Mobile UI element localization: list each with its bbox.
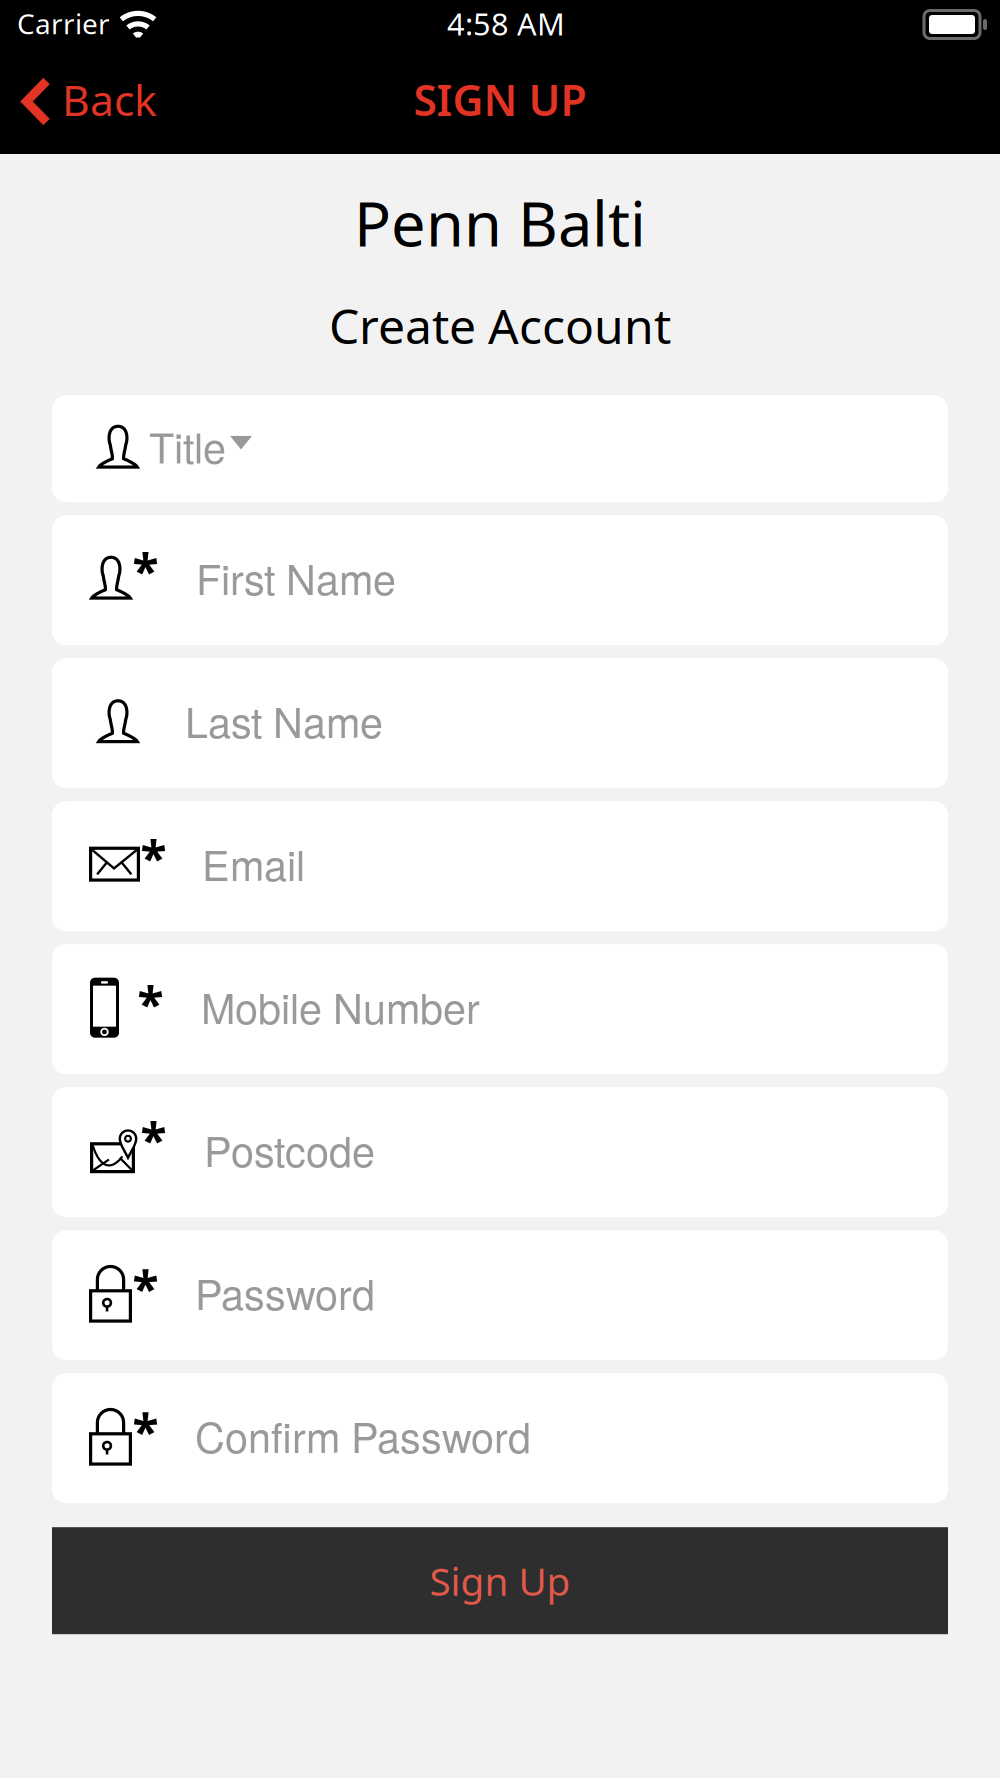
staticText: Mobile Number xyxy=(201,977,480,1036)
button[interactable]: * xyxy=(52,1230,948,1360)
staticText: * xyxy=(132,1256,158,1319)
button[interactable]: * xyxy=(52,801,948,931)
staticText: Confirm Password xyxy=(195,1406,531,1465)
staticText: Postcode xyxy=(204,1120,375,1179)
staticText: * xyxy=(140,825,166,889)
staticText: Create Account xyxy=(329,293,671,357)
staticText: Sign Up xyxy=(429,1555,570,1606)
staticText: * xyxy=(137,971,163,1035)
button[interactable]: * xyxy=(52,944,948,1074)
staticText: * xyxy=(132,538,158,602)
button[interactable]: Title xyxy=(52,395,948,502)
staticText: Back xyxy=(62,71,157,128)
staticText: 4:58 AM xyxy=(447,3,565,44)
button[interactable]: Last Name xyxy=(52,658,948,788)
staticText: Password xyxy=(195,1263,375,1322)
staticText: Carrier xyxy=(17,5,110,42)
button[interactable]: * xyxy=(52,1087,948,1217)
button[interactable]: Back xyxy=(0,49,177,154)
staticText: Title xyxy=(149,416,226,475)
button[interactable]: Sign Up xyxy=(52,1527,948,1634)
staticText: Email xyxy=(202,834,305,893)
button[interactable]: * xyxy=(52,1373,948,1503)
staticText: SIGN UP xyxy=(413,71,586,128)
staticText: First Name xyxy=(196,548,396,607)
staticText: * xyxy=(140,1107,166,1171)
button[interactable]: * xyxy=(52,515,948,645)
staticText: * xyxy=(132,1399,158,1462)
staticText: Last Name xyxy=(185,691,383,750)
staticText: Penn Balti xyxy=(354,182,646,263)
